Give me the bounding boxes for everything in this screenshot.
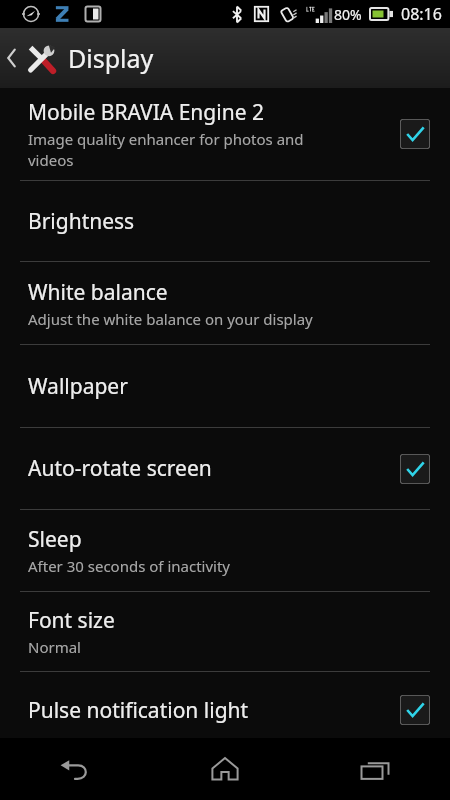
button[interactable]: Auto-rotate screen, on [400,454,430,484]
button[interactable]: Home [150,738,300,800]
staticText: Pulse notification light [28,696,249,725]
button[interactable]: Back [0,738,150,800]
staticText: Auto-rotate screen [28,454,212,483]
staticText: Font size [28,606,115,635]
staticText: Adjust the white balance on your display [28,309,358,329]
staticText: After 30 seconds of inactivity [28,556,358,576]
staticText: Image quality enhancer for photos and vi… [28,129,328,171]
staticText: 80% [334,5,362,24]
button[interactable]: Mobile BRAVIA Engine 2, on [400,119,430,149]
staticText: Normal [28,637,358,657]
button[interactable]: Navigate up, Display [0,28,450,88]
staticText: Mobile BRAVIA Engine 2 [28,98,264,127]
button[interactable]: Pulse notification light, on [400,695,430,725]
button[interactable]: Sleep [0,510,450,591]
button[interactable]: Brightness [0,181,450,261]
button[interactable]: Mobile BRAVIA Engine 2 [0,88,450,180]
button[interactable]: White balance [0,262,450,344]
staticText: Wallpaper [28,372,128,401]
staticText: 08:16 [401,3,442,25]
button[interactable]: Font size [0,592,450,671]
staticText: Sleep [28,525,82,554]
staticText: Brightness [28,207,135,236]
button[interactable]: Pulse notification light [0,672,450,748]
staticText: Display [68,41,154,75]
button[interactable]: Wallpaper [0,345,450,427]
button[interactable]: Auto-rotate screen [0,428,450,509]
staticText: White balance [28,278,168,307]
button[interactable]: Recent apps [300,738,450,800]
